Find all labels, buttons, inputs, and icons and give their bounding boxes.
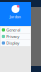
staticText: Jordan bbox=[9, 14, 21, 19]
button[interactable]: Profile photo bbox=[11, 5, 19, 13]
staticText: General bbox=[6, 27, 20, 32]
button[interactable]: Privacy bbox=[1, 33, 30, 40]
button[interactable]: General bbox=[1, 27, 30, 33]
staticText: Privacy bbox=[6, 34, 19, 39]
button[interactable]: Display bbox=[1, 40, 30, 46]
staticText: Display bbox=[6, 40, 19, 46]
